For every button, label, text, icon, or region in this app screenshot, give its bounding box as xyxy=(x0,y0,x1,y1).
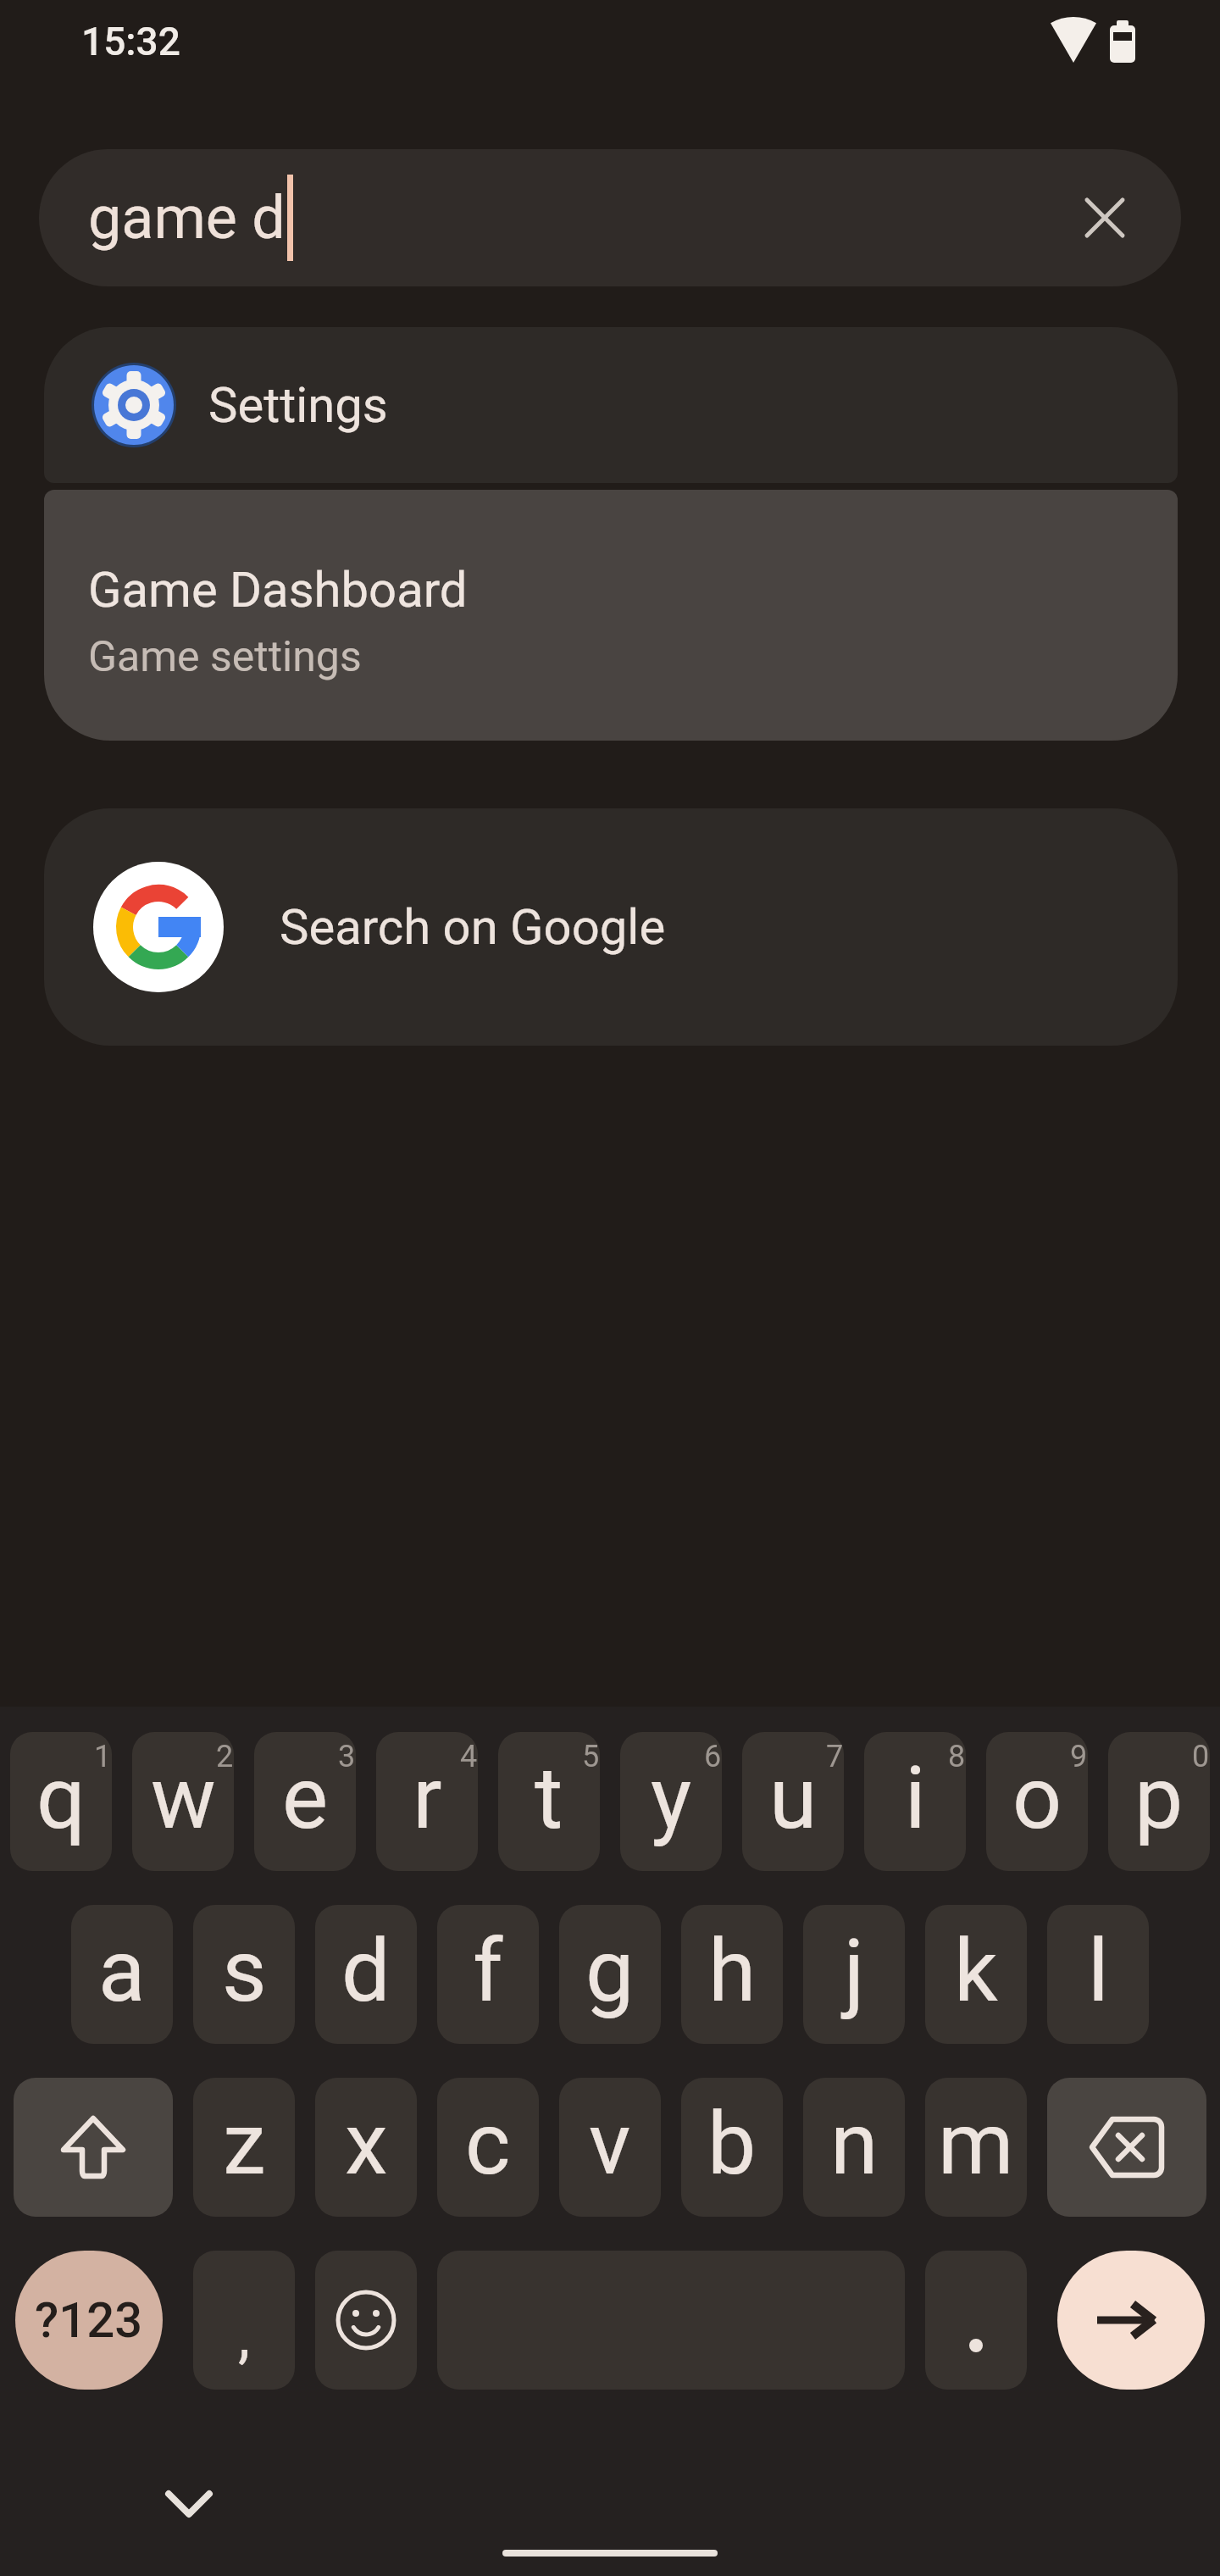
button[interactable]: d xyxy=(315,1905,417,2044)
staticText: e xyxy=(282,1747,329,1849)
button[interactable]: a xyxy=(71,1905,173,2044)
button[interactable]: e xyxy=(254,1732,356,1871)
button[interactable]: l xyxy=(1047,1905,1149,2044)
button[interactable]: Search on Google xyxy=(44,808,1178,1046)
staticText: k xyxy=(954,1920,998,2022)
staticText: b xyxy=(707,2093,757,2195)
staticText: 15:32 xyxy=(81,19,180,64)
staticText: w xyxy=(151,1747,216,1849)
staticText: 1 xyxy=(94,1739,112,1774)
staticText: g xyxy=(585,1920,635,2022)
staticText: Game Dashboard xyxy=(88,561,468,619)
button[interactable]: , xyxy=(193,2251,295,2390)
staticText: p xyxy=(1134,1747,1184,1849)
staticText: h xyxy=(708,1920,757,2022)
button[interactable]: t xyxy=(498,1732,600,1871)
button[interactable]: Game Dashboard xyxy=(44,490,1178,741)
staticText: 3 xyxy=(338,1739,356,1774)
button[interactable]: m xyxy=(925,2078,1027,2217)
button[interactable]: j xyxy=(803,1905,905,2044)
staticText: f xyxy=(473,1920,503,2022)
staticText: z xyxy=(223,2093,266,2195)
button[interactable] xyxy=(1047,2078,1206,2217)
button[interactable]: u xyxy=(742,1732,844,1871)
staticText: 0 xyxy=(1192,1739,1210,1774)
button[interactable]: r xyxy=(376,1732,478,1871)
button[interactable]: h xyxy=(681,1905,783,2044)
staticText: t xyxy=(535,1747,563,1849)
button[interactable]: i xyxy=(864,1732,966,1871)
staticText: x xyxy=(345,2093,388,2195)
button[interactable]: o xyxy=(986,1732,1088,1871)
staticText: , xyxy=(238,2300,251,2371)
button[interactable] xyxy=(315,2251,417,2390)
staticText: n xyxy=(830,2093,879,2195)
staticText: 5 xyxy=(582,1739,600,1774)
staticText: 9 xyxy=(1070,1739,1088,1774)
staticText: game d xyxy=(88,183,286,253)
staticText: v xyxy=(589,2093,631,2195)
button[interactable]: v xyxy=(559,2078,661,2217)
staticText: i xyxy=(905,1747,926,1849)
button[interactable]: y xyxy=(620,1732,722,1871)
button[interactable]: q xyxy=(10,1732,112,1871)
staticText: d xyxy=(341,1920,391,2022)
staticText: 4 xyxy=(460,1739,478,1774)
button[interactable] xyxy=(14,2078,173,2217)
button[interactable] xyxy=(1057,2251,1205,2390)
staticText: Search on Google xyxy=(280,898,666,956)
staticText: Settings xyxy=(208,376,388,434)
staticText: l xyxy=(1088,1920,1109,2022)
staticText: m xyxy=(938,2093,1014,2195)
button[interactable]: Settings xyxy=(44,327,1178,483)
button[interactable]: ?123 xyxy=(15,2251,163,2390)
staticText: 7 xyxy=(826,1739,844,1774)
button[interactable]: z xyxy=(193,2078,295,2217)
button[interactable]: s xyxy=(193,1905,295,2044)
button[interactable] xyxy=(925,2251,1027,2390)
button[interactable]: p xyxy=(1108,1732,1210,1871)
staticText: r xyxy=(413,1747,442,1849)
button[interactable]: f xyxy=(437,1905,539,2044)
staticText: 8 xyxy=(948,1739,966,1774)
button[interactable]: n xyxy=(803,2078,905,2217)
button[interactable]: b xyxy=(681,2078,783,2217)
button[interactable]: x xyxy=(315,2078,417,2217)
button[interactable] xyxy=(142,2457,236,2551)
button[interactable]: w xyxy=(132,1732,234,1871)
staticText: u xyxy=(769,1747,818,1849)
staticText: y xyxy=(651,1747,692,1849)
button[interactable]: c xyxy=(437,2078,539,2217)
staticText: a xyxy=(98,1920,146,2022)
staticText: Game settings xyxy=(88,632,362,682)
staticText: o xyxy=(1012,1747,1062,1849)
staticText: 6 xyxy=(704,1739,722,1774)
staticText: ?123 xyxy=(35,2291,143,2349)
staticText: 2 xyxy=(216,1739,234,1774)
staticText: j xyxy=(844,1920,865,2022)
staticText: s xyxy=(222,1920,267,2022)
staticText: c xyxy=(465,2093,511,2195)
button[interactable]: game d xyxy=(39,149,1181,286)
staticText: q xyxy=(36,1747,86,1849)
button[interactable]: k xyxy=(925,1905,1027,2044)
button[interactable]: g xyxy=(559,1905,661,2044)
